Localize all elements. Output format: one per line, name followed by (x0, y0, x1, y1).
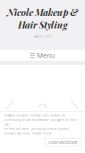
button[interactable]: Close and accept (45, 138, 80, 147)
staticText: Close and accept (48, 140, 77, 145)
staticText: Hair Styling (18, 18, 67, 31)
staticText: Menu (37, 51, 55, 60)
button[interactable]: Previous slide (5, 100, 15, 111)
staticText: use. (4, 123, 10, 126)
staticText: Nicole Makeup & (7, 6, 78, 18)
button[interactable]: Menu (0, 50, 85, 61)
staticText: cookies, see here: Cookie Policy (4, 132, 51, 135)
button[interactable]: Next slide (70, 100, 80, 111)
staticText: Privacy & Cookies: This site uses cookie… (4, 114, 65, 117)
staticText: To find out more, including how to contr… (4, 127, 69, 131)
staticText: Makeup Artist (33, 35, 51, 38)
staticText: continuing to use this website, you agre… (4, 118, 77, 121)
